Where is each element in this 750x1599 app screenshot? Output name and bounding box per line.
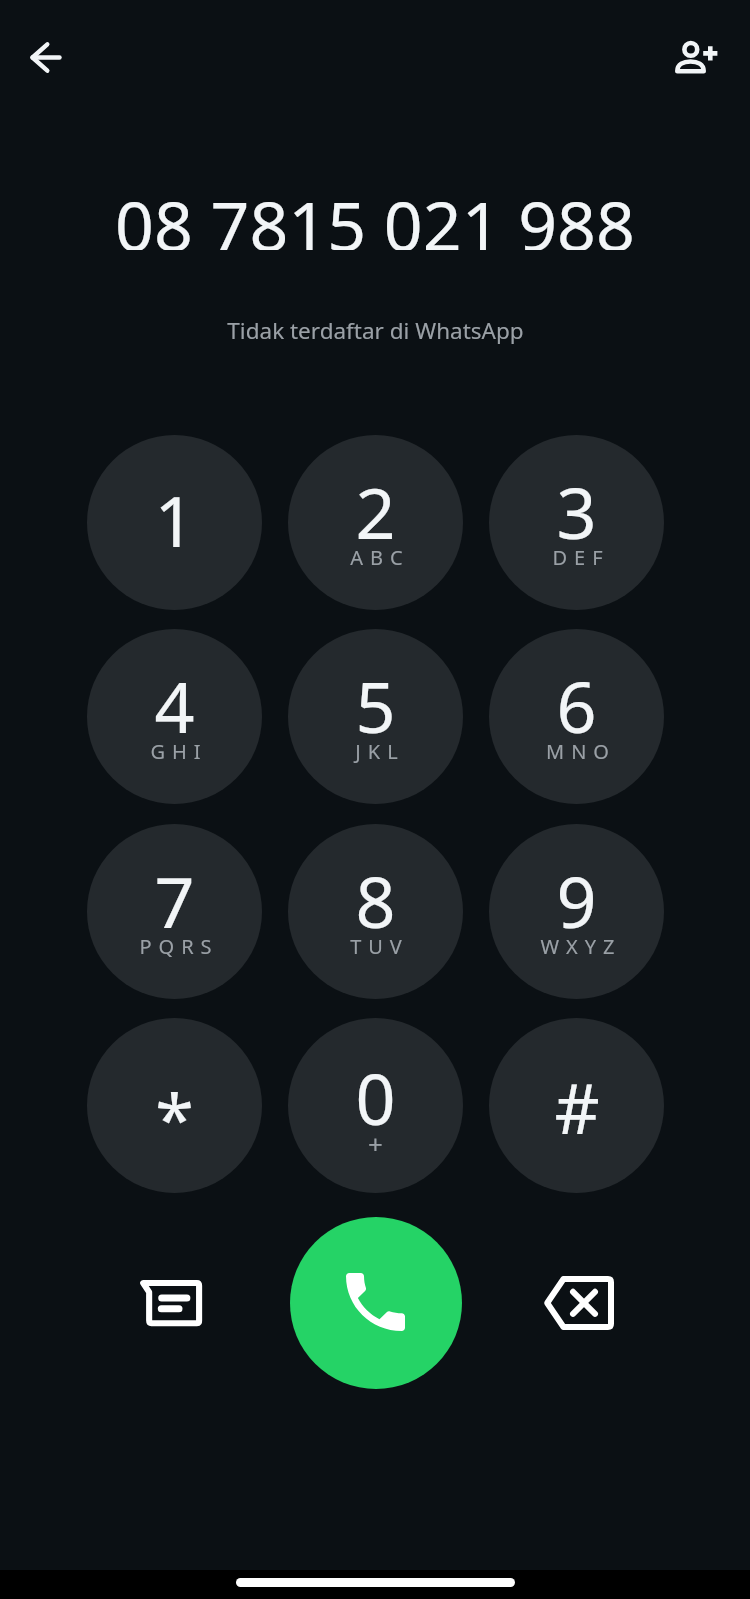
button[interactable]: 3 — [489, 435, 664, 610]
button[interactable]: Back — [13, 27, 73, 87]
staticText: 9 — [556, 853, 597, 948]
staticText: JKL — [355, 738, 405, 765]
button[interactable]: 4 — [87, 629, 262, 804]
staticText: DEF — [552, 544, 610, 571]
staticText: 0 — [355, 1050, 396, 1145]
button[interactable]: # — [489, 1018, 664, 1193]
button[interactable]: 2 — [288, 435, 463, 610]
button[interactable]: Send message — [111, 1243, 231, 1363]
button[interactable]: 6 — [489, 629, 664, 804]
staticText: WXYZ — [540, 933, 622, 960]
staticText: MNO — [546, 738, 616, 765]
button[interactable]: Backspace — [519, 1243, 639, 1363]
staticText: 4 — [154, 658, 195, 753]
button[interactable]: 7 — [87, 824, 262, 999]
button[interactable]: 8 — [288, 824, 463, 999]
button[interactable]: Call — [290, 1217, 462, 1389]
staticText: 7 — [154, 853, 195, 948]
staticText: TUV — [350, 933, 409, 960]
staticText: 08 7815 021 988 — [115, 178, 635, 250]
staticText: + — [368, 1126, 383, 1161]
staticText: Tidak terdaftar di WhatsApp — [227, 315, 524, 346]
staticText: 2 — [355, 464, 396, 559]
staticText: 6 — [556, 658, 597, 753]
staticText: ABC — [350, 544, 410, 571]
staticText: # — [554, 1059, 600, 1154]
button[interactable]: 1 — [87, 435, 262, 610]
button[interactable]: 9 — [489, 824, 664, 999]
staticText: 5 — [355, 658, 396, 753]
button[interactable]: Add contact — [667, 27, 727, 87]
staticText: 1 — [154, 472, 195, 567]
staticText: PQRS — [139, 933, 219, 960]
button[interactable]: * — [87, 1018, 262, 1193]
staticText: 3 — [556, 464, 597, 559]
staticText: * — [155, 1070, 194, 1165]
staticText: GHI — [150, 738, 208, 765]
button[interactable]: 5 — [288, 629, 463, 804]
button[interactable]: 0 — [288, 1018, 463, 1193]
staticText: 8 — [355, 853, 396, 948]
